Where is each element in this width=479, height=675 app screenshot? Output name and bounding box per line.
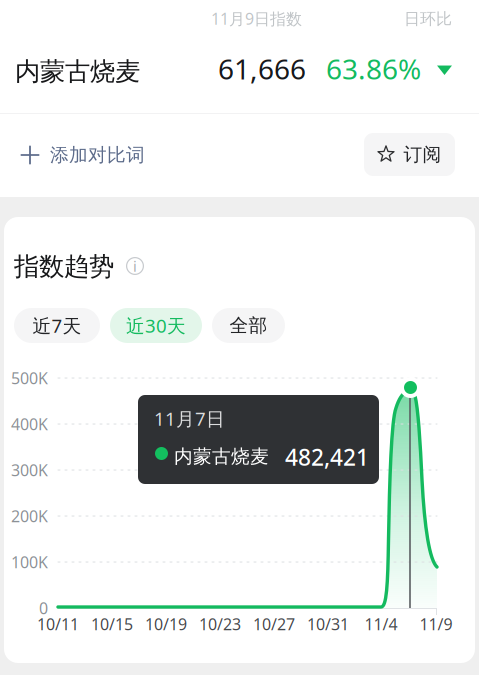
- staticText: 订阅: [403, 143, 441, 166]
- staticText: 全部: [229, 314, 267, 337]
- staticText: 日环比: [404, 9, 452, 29]
- staticText: 11/9: [419, 613, 452, 635]
- staticText: 10/23: [199, 613, 241, 635]
- staticText: 10/15: [91, 613, 133, 635]
- staticText: 500K: [11, 367, 48, 389]
- staticText: 10/27: [253, 613, 295, 635]
- staticText: 11月7日: [154, 406, 225, 431]
- staticText: i: [133, 256, 137, 276]
- staticText: 10/11: [37, 613, 79, 635]
- staticText: 近30天: [126, 313, 186, 338]
- staticText: 63.86%: [326, 50, 421, 87]
- button[interactable]: 全部: [212, 308, 285, 343]
- button[interactable]: 近7天: [14, 308, 100, 343]
- staticText: 近7天: [32, 313, 81, 338]
- staticText: 0: [39, 597, 48, 619]
- staticText: 100K: [11, 551, 48, 573]
- staticText: 添加对比词: [50, 143, 145, 166]
- staticText: 内蒙古烧麦: [15, 56, 140, 87]
- staticText: 指数趋势: [14, 251, 114, 282]
- button[interactable]: 近30天: [110, 308, 202, 343]
- staticText: 200K: [11, 505, 48, 527]
- staticText: 11/4: [364, 613, 397, 635]
- staticText: 内蒙古烧麦: [174, 445, 269, 468]
- staticText: 10/19: [145, 613, 187, 635]
- button[interactable]: 订阅: [364, 133, 455, 176]
- staticText: 11月9日指数: [211, 8, 302, 29]
- button[interactable]: 添加对比词: [0, 133, 159, 177]
- staticText: 482,421: [285, 442, 369, 472]
- staticText: 400K: [11, 413, 48, 435]
- staticText: 300K: [11, 459, 48, 481]
- staticText: 61,666: [218, 50, 306, 87]
- staticText: 10/31: [307, 613, 349, 635]
